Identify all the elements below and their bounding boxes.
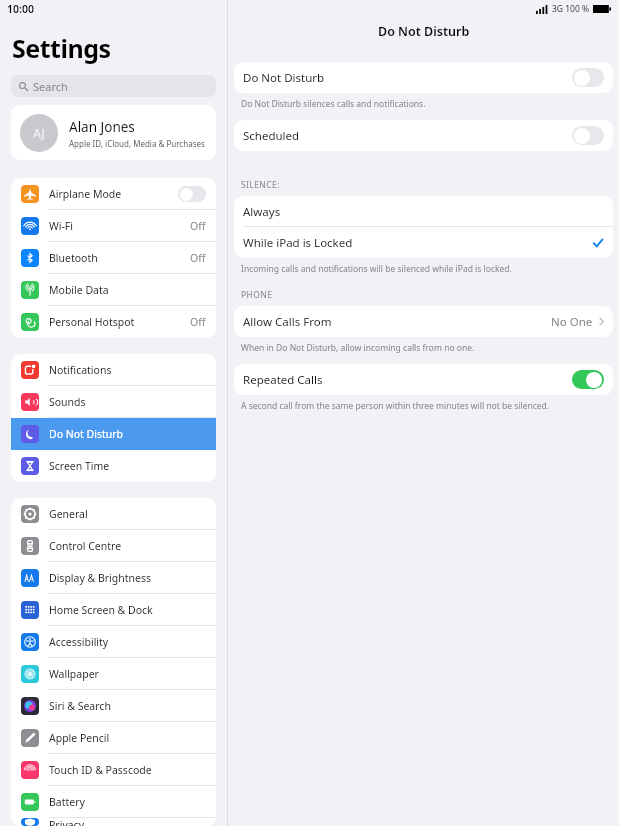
staticText: Off bbox=[190, 251, 206, 265]
staticText: No One bbox=[551, 314, 593, 330]
button[interactable]: Off bbox=[178, 186, 206, 202]
button[interactable]: Allow Calls From bbox=[234, 306, 613, 337]
staticText: Search bbox=[33, 79, 68, 94]
button[interactable]: Home Screen & Dock bbox=[11, 594, 216, 626]
staticText: Off bbox=[190, 315, 206, 329]
staticText: Home Screen & Dock bbox=[49, 603, 206, 617]
button[interactable]: AJ bbox=[11, 105, 216, 160]
staticText: Bluetooth bbox=[49, 251, 190, 265]
button[interactable]: General bbox=[11, 498, 216, 530]
staticText: Control Centre bbox=[49, 539, 206, 553]
staticText: Notifications bbox=[49, 363, 206, 377]
staticText: Airplane Mode bbox=[49, 187, 178, 201]
staticText: Do Not Disturb bbox=[49, 427, 206, 441]
button[interactable]: Screen Time bbox=[11, 450, 216, 482]
staticText: Incoming calls and notifications will be… bbox=[241, 263, 512, 275]
button[interactable]: While iPad is Locked bbox=[234, 227, 613, 258]
staticText: Do Not Disturb bbox=[378, 23, 470, 40]
staticText: Screen Time bbox=[49, 459, 206, 473]
button[interactable]: Notifications bbox=[11, 354, 216, 386]
button[interactable]: Mobile Data bbox=[11, 274, 216, 306]
button[interactable]: Search bbox=[11, 75, 216, 97]
staticText: Display & Brightness bbox=[49, 571, 206, 585]
button[interactable]: Off bbox=[572, 126, 604, 145]
button[interactable]: Do Not Disturb bbox=[234, 62, 613, 93]
staticText: Siri & Search bbox=[49, 699, 206, 713]
staticText: Alan Jones bbox=[69, 118, 135, 136]
staticText: When in Do Not Disturb, allow incoming c… bbox=[241, 342, 475, 354]
staticText: A second call from the same person withi… bbox=[241, 400, 550, 412]
staticText: Apple Pencil bbox=[49, 731, 206, 745]
button[interactable]: Airplane Mode bbox=[11, 178, 216, 210]
button[interactable]: Off bbox=[572, 68, 604, 87]
button[interactable]: Privacy bbox=[11, 818, 216, 826]
staticText: Touch ID & Passcode bbox=[49, 763, 206, 777]
button[interactable]: Wi-Fi bbox=[11, 210, 216, 242]
button[interactable]: Do Not Disturb bbox=[11, 418, 216, 450]
staticText: Settings bbox=[12, 31, 111, 65]
button[interactable]: Accessibility bbox=[11, 626, 216, 658]
staticText: Allow Calls From bbox=[243, 314, 551, 330]
staticText: 10:00 bbox=[7, 2, 34, 16]
staticText: PHONE bbox=[241, 289, 273, 301]
staticText: Wallpaper bbox=[49, 667, 206, 681]
staticText: Repeated Calls bbox=[243, 372, 572, 388]
button[interactable]: Always bbox=[234, 196, 613, 227]
staticText: Scheduled bbox=[243, 128, 572, 144]
staticText: Sounds bbox=[49, 395, 206, 409]
staticText: Do Not Disturb bbox=[243, 70, 572, 86]
staticText: AJ bbox=[33, 125, 46, 142]
staticText: Wi-Fi bbox=[49, 219, 190, 233]
button[interactable]: Battery bbox=[11, 786, 216, 818]
staticText: Mobile Data bbox=[49, 283, 206, 297]
staticText: Apple ID, iCloud, Media & Purchases bbox=[69, 138, 205, 149]
staticText: 3G 100 % bbox=[552, 3, 590, 15]
button[interactable]: Wallpaper bbox=[11, 658, 216, 690]
button[interactable]: Repeated Calls bbox=[234, 364, 613, 395]
staticText: SILENCE: bbox=[241, 179, 280, 191]
staticText: Always bbox=[243, 204, 604, 220]
staticText: Off bbox=[190, 219, 206, 233]
staticText: Privacy bbox=[49, 818, 206, 826]
button[interactable]: Siri & Search bbox=[11, 690, 216, 722]
button[interactable]: Sounds bbox=[11, 386, 216, 418]
button[interactable]: Bluetooth bbox=[11, 242, 216, 274]
staticText: General bbox=[49, 507, 206, 521]
staticText: Do Not Disturb silences calls and notifi… bbox=[241, 98, 426, 110]
staticText: Personal Hotspot bbox=[49, 315, 190, 329]
button[interactable]: Scheduled bbox=[234, 120, 613, 151]
staticText: While iPad is Locked bbox=[243, 235, 592, 251]
button[interactable]: Touch ID & Passcode bbox=[11, 754, 216, 786]
button[interactable]: Control Centre bbox=[11, 530, 216, 562]
button[interactable]: On bbox=[572, 370, 604, 389]
staticText: Battery bbox=[49, 795, 206, 809]
button[interactable]: Apple Pencil bbox=[11, 722, 216, 754]
button[interactable]: Display & Brightness bbox=[11, 562, 216, 594]
staticText: Accessibility bbox=[49, 635, 206, 649]
button[interactable]: Personal Hotspot bbox=[11, 306, 216, 338]
